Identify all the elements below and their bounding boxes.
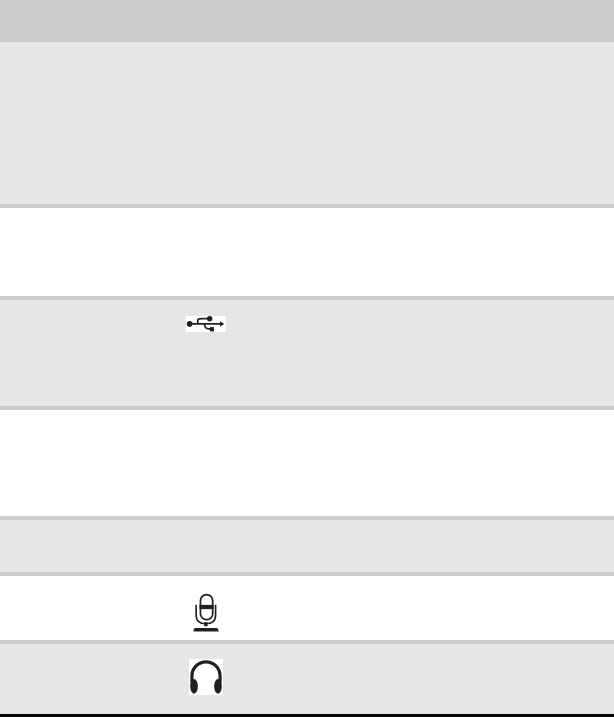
button[interactable]: Headphones [189,659,223,695]
button[interactable]: Microphone [191,592,221,633]
button[interactable]: USB [186,316,226,332]
